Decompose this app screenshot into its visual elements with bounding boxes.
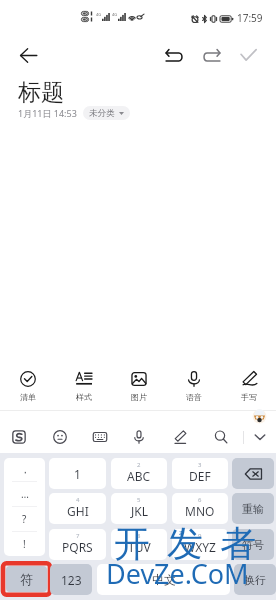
button[interactable]: 图片 — [111, 361, 166, 411]
staticText: 者 — [220, 521, 256, 566]
staticText: 手写 — [241, 392, 257, 402]
staticText: 换行 — [244, 573, 266, 587]
button[interactable]: Sogou — [4, 423, 34, 451]
staticText: … — [21, 487, 29, 501]
button[interactable]: Redo — [196, 39, 228, 71]
staticText: ， — [20, 463, 30, 476]
staticText: 中文 — [152, 572, 176, 587]
button[interactable]: 9 — [172, 529, 228, 560]
staticText: 17:59 — [237, 11, 263, 25]
button[interactable]: Keyboard layout — [85, 423, 115, 451]
staticText: JKL — [131, 503, 148, 519]
staticText: 1 — [74, 466, 81, 482]
button[interactable] — [232, 458, 274, 489]
staticText: TUV — [128, 539, 151, 555]
staticText: z — [179, 528, 183, 538]
staticText: 未分类 — [89, 108, 115, 119]
button[interactable]: 换行 — [234, 564, 276, 595]
staticText: 重输 — [242, 502, 264, 516]
button[interactable]: 123 — [50, 564, 92, 595]
button[interactable]: Done — [232, 39, 264, 71]
staticText: GHI — [67, 503, 89, 519]
button[interactable]: 符 — [6, 566, 47, 592]
staticText: 1月11日 14:53 — [18, 107, 77, 119]
button[interactable]: 3 — [172, 458, 228, 489]
staticText: WXYZ — [184, 539, 216, 555]
button[interactable]: Undo — [158, 39, 190, 71]
staticText: 发 — [167, 521, 203, 566]
button[interactable]: 2 — [111, 458, 167, 489]
button[interactable]: 语音 — [166, 361, 221, 411]
staticText: 6 — [198, 496, 202, 504]
button[interactable]: 5 — [111, 493, 167, 524]
button[interactable]: ? — [4, 507, 45, 531]
button[interactable]: 手写 — [221, 361, 276, 411]
staticText: 8 — [137, 532, 141, 540]
button[interactable]: Hide keyboard — [245, 423, 275, 451]
button[interactable]: 样式 — [56, 361, 111, 411]
staticText: 样式 — [76, 392, 92, 402]
staticText: 语音 — [186, 392, 202, 402]
button[interactable]: ， — [4, 458, 45, 481]
staticText: ABC — [127, 468, 151, 484]
staticText: 2 — [137, 461, 141, 469]
button[interactable]: 清单 — [0, 361, 56, 411]
staticText: ? — [22, 512, 27, 526]
staticText: 4G — [96, 12, 102, 17]
button[interactable]: … — [4, 482, 45, 506]
button[interactable]: ! — [4, 532, 45, 556]
staticText: 123 — [61, 572, 82, 588]
staticText: 9 — [198, 532, 202, 540]
staticText: 符号 — [242, 538, 264, 552]
staticText: 3 — [198, 461, 202, 469]
button[interactable]: 6 — [172, 493, 228, 524]
button[interactable]: Emoji — [45, 423, 75, 451]
button[interactable]: 7 — [49, 529, 106, 560]
staticText: 4 — [76, 496, 80, 504]
staticText: 7 — [76, 532, 80, 540]
staticText: DevZe.CoM — [106, 555, 249, 592]
staticText: 图片 — [131, 392, 147, 402]
button[interactable]: 4 — [49, 493, 106, 524]
staticText: 开 — [114, 521, 150, 566]
button[interactable]: 未分类 — [83, 106, 130, 120]
button[interactable]: 8 — [111, 529, 167, 560]
button[interactable]: 中文 — [97, 564, 230, 595]
button[interactable]: Search — [206, 423, 236, 451]
staticText: DEF — [189, 468, 211, 484]
staticText: 标题 — [18, 78, 64, 107]
staticText: PQRS — [62, 539, 93, 555]
staticText: 清单 — [20, 392, 36, 402]
staticText: 4G — [112, 12, 118, 17]
button[interactable]: 重输 — [232, 493, 274, 524]
button[interactable]: 1 — [49, 458, 106, 489]
button[interactable]: Voice input — [124, 423, 154, 451]
button[interactable]: 符号 — [232, 529, 274, 560]
staticText: ! — [23, 537, 26, 551]
button[interactable]: Handwriting input — [165, 423, 195, 451]
staticText: MNO — [185, 503, 215, 519]
staticText: 符 — [20, 571, 33, 587]
staticText: 5 — [137, 496, 141, 504]
button[interactable]: Back — [12, 39, 44, 71]
